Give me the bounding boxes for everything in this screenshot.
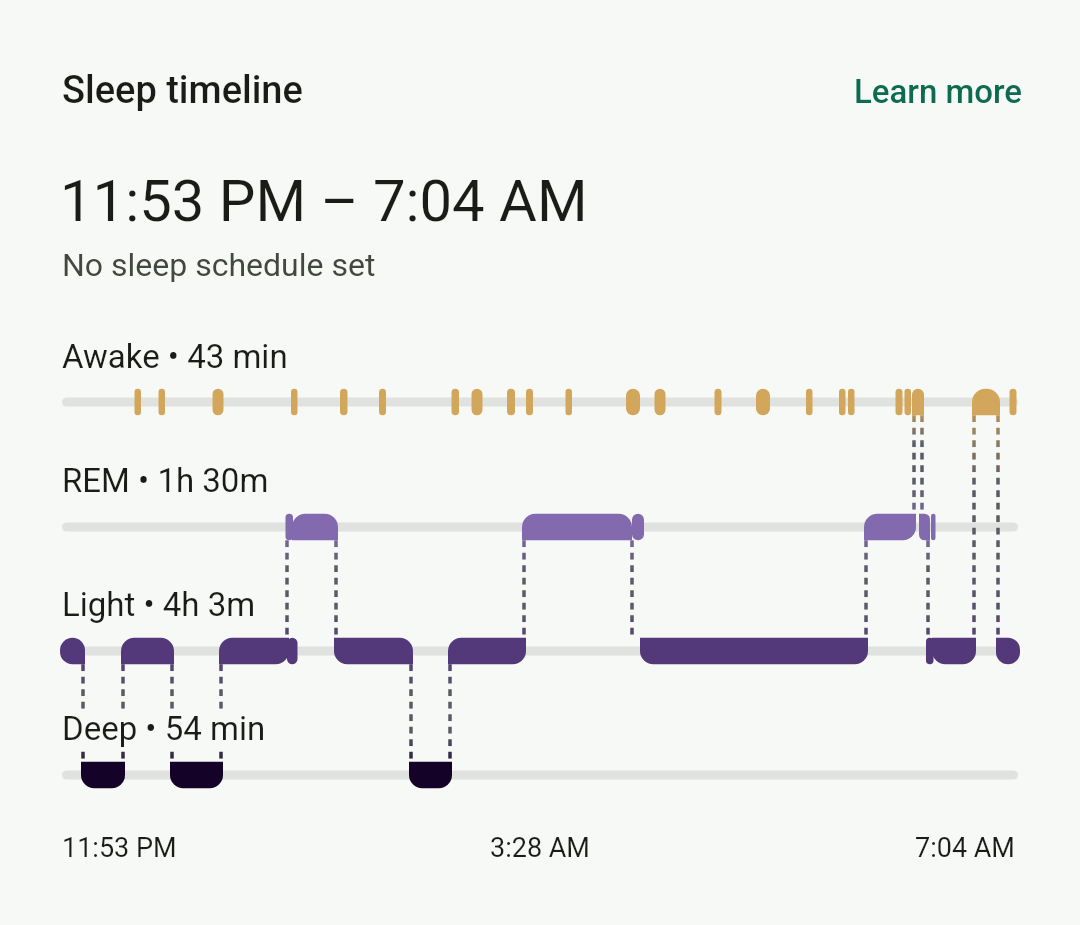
staticText: Sleep timeline	[62, 68, 303, 113]
staticText: No sleep schedule set	[62, 246, 376, 284]
staticText: 11:53 PM – 7:04 AM	[60, 167, 588, 235]
staticText: REM • 1h 30m	[62, 461, 269, 500]
button[interactable]: Learn more	[854, 72, 1023, 111]
staticText: 7:04 AM	[915, 832, 1015, 864]
staticText: Light • 4h 3m	[62, 585, 256, 624]
staticText: Awake • 43 min	[62, 337, 288, 376]
staticText: Deep • 54 min	[62, 709, 266, 748]
staticText: 11:53 PM	[62, 832, 177, 864]
staticText: Learn more	[854, 72, 1023, 111]
button[interactable]: Sleep timeline	[62, 68, 303, 113]
staticText: 3:28 AM	[490, 832, 590, 864]
